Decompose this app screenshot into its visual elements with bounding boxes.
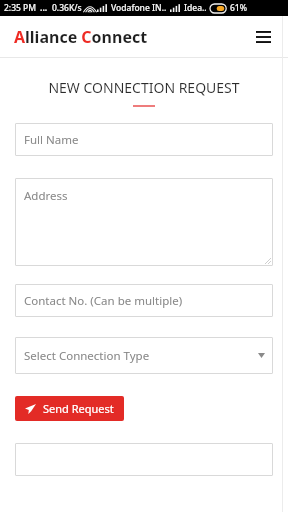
staticText: Full Name [24, 132, 79, 148]
button[interactable]: Open navigation menu [250, 24, 276, 50]
staticText: NEW CONNECTION REQUEST [0, 78, 288, 97]
button[interactable]: Select Connection Type [15, 337, 273, 374]
staticText: 0.36K/s [52, 2, 82, 14]
staticText: Address [24, 188, 68, 204]
button[interactable]: Address [15, 178, 273, 266]
staticText: Vodafone IN.. [111, 2, 167, 14]
button[interactable]: Contact No. (Can be multiple) [15, 284, 273, 317]
staticText: 2:35 PM [4, 2, 37, 14]
staticText: Contact No. (Can be multiple) [24, 293, 183, 309]
button[interactable]: Full Name [15, 123, 273, 156]
staticText: Idea.. [184, 2, 207, 14]
button[interactable] [15, 443, 273, 476]
staticText: Send Request [43, 401, 114, 416]
staticText: Select Connection Type [24, 348, 150, 364]
staticText: Alliance Connect [14, 26, 148, 48]
staticText: 61% [230, 2, 247, 14]
button[interactable]: Send Request [15, 396, 124, 421]
staticText: ... [40, 2, 48, 14]
